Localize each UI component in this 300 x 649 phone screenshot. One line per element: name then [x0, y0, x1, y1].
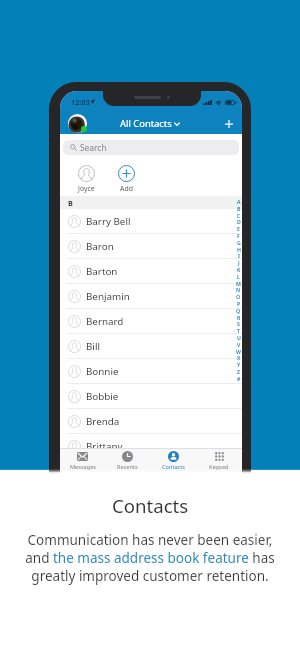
staticText: Search — [80, 142, 107, 153]
button[interactable]: Bobbie — [60, 384, 242, 409]
button[interactable]: Brittany — [60, 434, 242, 459]
staticText: D — [237, 218, 241, 225]
staticText: Joyce — [78, 184, 95, 193]
button[interactable]: Add — [110, 165, 142, 193]
button[interactable]: Bonnie — [60, 359, 242, 384]
staticText: X — [237, 354, 241, 361]
staticText: V — [237, 341, 241, 348]
staticText: P — [237, 300, 241, 307]
button[interactable]: Recents — [105, 449, 150, 473]
staticText: Benjamin — [86, 290, 130, 303]
staticText: Recents — [117, 463, 138, 471]
staticText: Barton — [86, 265, 118, 278]
staticText: O — [236, 293, 241, 300]
staticText: 12:03 — [71, 97, 90, 107]
button[interactable]: Add contact — [221, 116, 237, 132]
staticText: L — [237, 273, 240, 280]
button[interactable]: Bill — [60, 334, 242, 359]
staticText: Brenda — [86, 415, 120, 428]
staticText: C — [237, 212, 241, 219]
staticText: H — [237, 246, 241, 253]
staticText: J — [238, 259, 240, 266]
staticText: E — [237, 225, 240, 232]
staticText: Q — [236, 307, 241, 314]
staticText: M — [236, 280, 241, 287]
staticText: Bernard — [86, 315, 124, 328]
staticText: T — [237, 327, 240, 334]
staticText: G — [237, 239, 241, 246]
staticText: I — [238, 252, 240, 259]
staticText: S — [237, 320, 240, 327]
staticText: Communication has never been easier, and… — [25, 531, 275, 585]
button[interactable]: Baron — [60, 234, 242, 259]
staticText: Contacts — [162, 463, 185, 471]
staticText: Keypad — [209, 463, 229, 471]
staticText: U — [237, 334, 241, 341]
button[interactable]: Brenda — [60, 409, 242, 434]
staticText: Bill — [86, 340, 100, 353]
staticText: A — [237, 198, 241, 205]
staticText: B — [237, 205, 241, 212]
staticText: Contacts — [112, 493, 189, 518]
staticText: Baron — [86, 240, 114, 253]
staticText: Y — [237, 361, 241, 368]
staticText: Z — [237, 368, 240, 375]
button[interactable]: Contacts — [150, 449, 196, 473]
button[interactable]: Messages — [60, 449, 105, 473]
staticText: Brittany — [86, 440, 123, 453]
button[interactable]: Search — [63, 140, 239, 155]
staticText: R — [237, 314, 241, 321]
staticText: N — [236, 286, 241, 293]
staticText: Bobbie — [86, 390, 119, 403]
staticText: F — [237, 232, 240, 239]
staticText: All Contacts — [120, 117, 172, 130]
button[interactable]: Profile — [68, 114, 87, 133]
staticText: Add — [120, 184, 133, 193]
staticText: Barry Bell — [86, 215, 131, 228]
button[interactable]: All Contacts — [120, 117, 180, 130]
staticText: Messages — [70, 463, 96, 471]
staticText: K — [237, 266, 241, 273]
button[interactable]: Keypad — [196, 449, 242, 473]
staticText: # — [237, 375, 241, 382]
staticText: Bonnie — [86, 365, 119, 378]
button[interactable]: Joyce — [70, 165, 102, 193]
button[interactable]: Benjamin — [60, 284, 242, 309]
button[interactable]: Bernard — [60, 309, 242, 334]
button[interactable]: Barry Bell — [60, 209, 242, 234]
staticText: W — [236, 348, 241, 355]
button[interactable]: Barton — [60, 259, 242, 284]
staticText: B — [68, 198, 73, 208]
